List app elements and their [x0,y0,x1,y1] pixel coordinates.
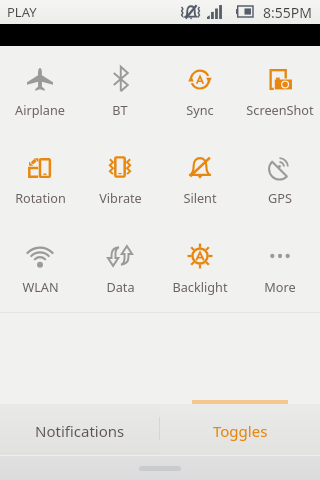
staticText: Airplane [15,101,65,118]
button[interactable]: Data [80,223,160,312]
button[interactable]: Vibrate [80,134,160,223]
staticText: Rotation [15,189,66,206]
button[interactable]: BT [80,46,160,134]
staticText: Vibrate [99,189,142,206]
staticText: Data [106,278,135,295]
button[interactable]: More [240,223,320,312]
staticText: WLAN [22,278,59,295]
button[interactable]: GPS [240,134,320,223]
staticText: Notifications [35,421,125,441]
staticText: PLAY [7,3,37,21]
staticText: More [264,278,296,295]
button[interactable]: WLAN [0,223,80,312]
button[interactable]: Sync [160,46,240,134]
staticText: Backlight [172,278,228,295]
staticText: 8:55PM [263,3,312,22]
button[interactable]: Silent [160,134,240,223]
staticText: Sync [186,101,214,118]
staticText: Silent [183,189,217,206]
button[interactable]: ScreenShot [240,46,320,134]
button[interactable]: Rotation [0,134,80,223]
staticText: Toggles [213,421,268,441]
staticText: BT [112,101,128,118]
button[interactable]: Airplane [0,46,80,134]
button[interactable]: Toggles [160,404,320,455]
staticText: ScreenShot [246,101,314,118]
staticText: GPS [268,189,292,206]
button[interactable]: Backlight [160,223,240,312]
button[interactable]: Notifications [0,404,160,455]
